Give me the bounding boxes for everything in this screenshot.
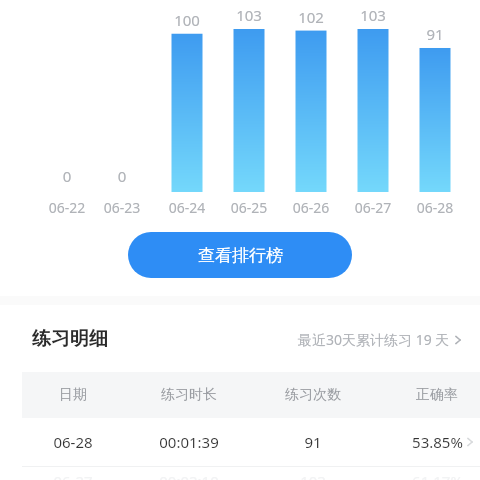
staticText: 查看排行榜 <box>198 245 283 266</box>
staticText: 103 <box>219 5 279 25</box>
staticText: 06-25 <box>217 198 281 217</box>
staticText: 100 <box>157 10 217 30</box>
staticText: 103 <box>343 5 403 25</box>
staticText: 06-27 <box>341 198 405 217</box>
staticText: 正确率 <box>416 386 458 404</box>
staticText: 练习次数 <box>285 386 341 404</box>
staticText: 06-28 <box>53 432 93 452</box>
button[interactable]: 练习明细 <box>0 313 480 365</box>
staticText: 练习时长 <box>161 386 217 404</box>
staticText: 0 <box>92 166 152 186</box>
staticText: 06-26 <box>279 198 343 217</box>
staticText: 06-22 <box>35 198 99 217</box>
button[interactable]: 查看排行榜 <box>128 232 352 278</box>
staticText: 06-24 <box>155 198 219 217</box>
button[interactable]: 06-28 <box>0 418 480 466</box>
staticText: 练习明细 <box>32 327 108 351</box>
staticText: 103 <box>300 471 326 480</box>
staticText: 00:01:39 <box>159 432 219 452</box>
staticText: 61.17% <box>412 471 463 480</box>
staticText: 06-23 <box>90 198 154 217</box>
staticText: 日期 <box>59 386 87 404</box>
staticText: 91 <box>405 24 465 44</box>
staticText: 53.85% <box>412 432 463 452</box>
staticText: 06-28 <box>403 198 467 217</box>
staticText: 0 <box>37 166 97 186</box>
staticText: 102 <box>281 7 341 27</box>
staticText: 00:02:10 <box>159 471 219 480</box>
staticText: 91 <box>304 432 322 452</box>
staticText: 最近30天累计练习 19 天 <box>298 330 450 349</box>
staticText: 06-27 <box>53 471 93 480</box>
